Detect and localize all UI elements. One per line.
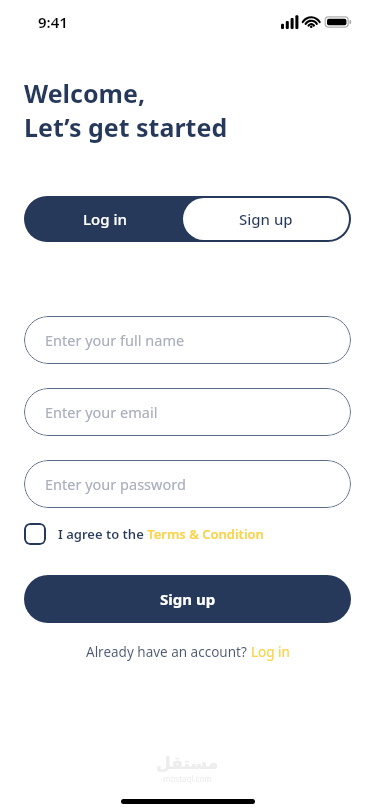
staticText: Sign up <box>160 589 216 609</box>
staticText: Let’s get started <box>24 110 228 144</box>
staticText: Enter your email <box>45 402 158 422</box>
staticText: 9:41 <box>38 12 68 32</box>
staticText: Log in <box>251 643 290 661</box>
button[interactable]: Log in <box>24 196 186 242</box>
staticText: Already have an account? <box>86 643 251 661</box>
staticText: Log in <box>83 209 127 229</box>
staticText: Enter your full name <box>45 330 185 350</box>
button[interactable]: Already have an account? <box>86 643 290 661</box>
staticText: Enter your password <box>45 474 186 494</box>
staticText: I agree to the Terms & Condition <box>58 525 264 543</box>
button[interactable]: Enter your full name <box>24 316 351 364</box>
button[interactable]: Enter your password <box>24 460 351 508</box>
staticText: mostaql.com <box>163 773 212 784</box>
staticText: Welcome, <box>24 76 146 110</box>
staticText: مستقل <box>156 753 219 773</box>
button[interactable]: Sign up <box>24 575 351 623</box>
button[interactable]: Sign up <box>183 198 349 240</box>
button[interactable]: Enter your email <box>24 388 351 436</box>
staticText: Sign up <box>239 209 293 229</box>
button[interactable]: I agree to the Terms & Condition <box>24 523 264 545</box>
